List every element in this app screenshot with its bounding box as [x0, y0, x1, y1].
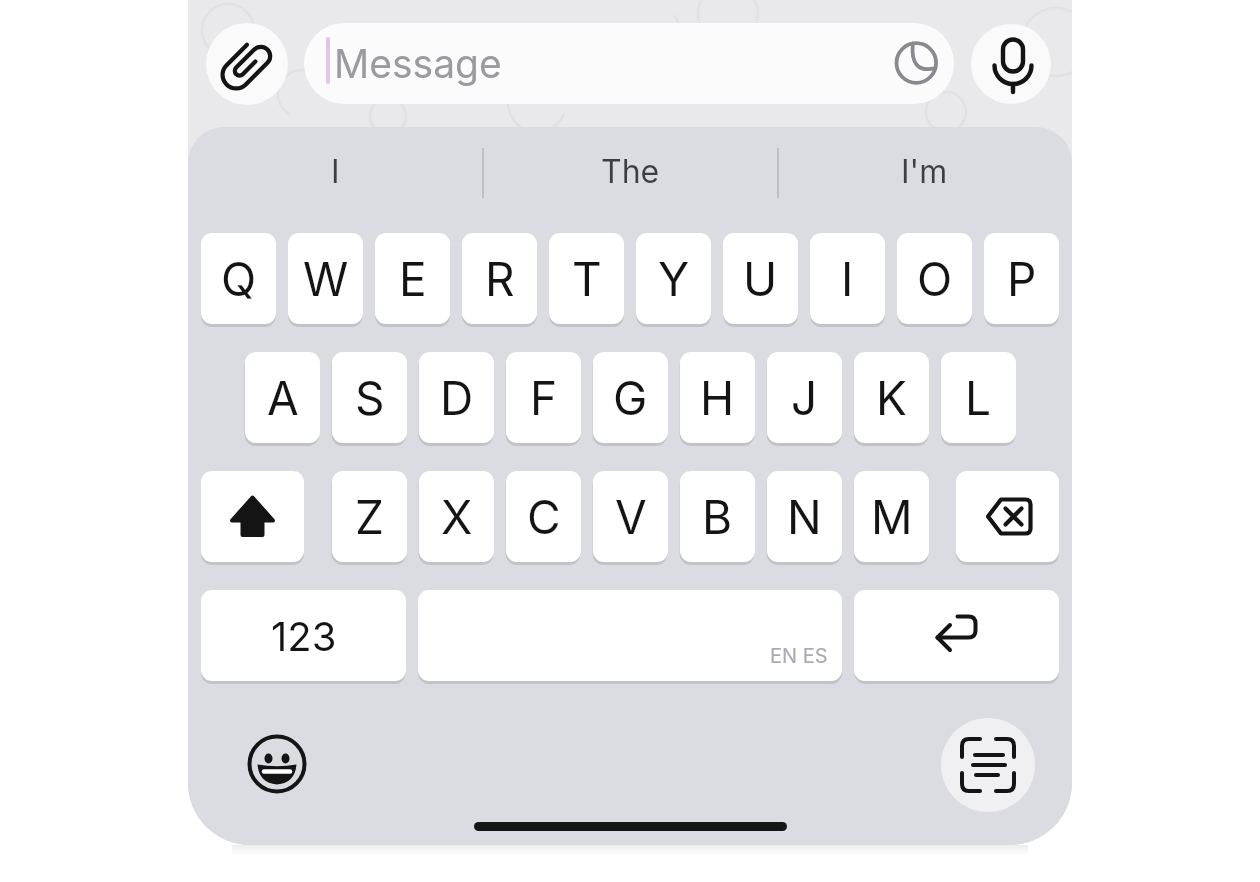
button[interactable]: I	[810, 233, 885, 324]
staticText: V	[615, 489, 647, 545]
button[interactable]: U	[723, 233, 798, 324]
staticText: F	[530, 370, 558, 426]
button[interactable]: C	[506, 471, 581, 562]
button[interactable]	[941, 718, 1035, 812]
staticText: P	[1007, 251, 1037, 307]
staticText: T	[572, 251, 602, 307]
staticText: H	[700, 370, 735, 426]
button[interactable]: F	[506, 352, 581, 443]
staticText: J	[791, 370, 818, 426]
staticText: Message	[334, 40, 502, 87]
button[interactable]: L	[941, 352, 1016, 443]
button[interactable]	[854, 590, 1059, 681]
button[interactable]: 123	[201, 590, 406, 681]
button[interactable]: I'm	[777, 140, 1072, 202]
button[interactable]: B	[680, 471, 755, 562]
staticText: EN ES	[770, 644, 828, 668]
staticText: K	[876, 370, 907, 426]
button[interactable]: Q	[201, 233, 276, 324]
staticText: M	[871, 489, 913, 545]
staticText: I	[841, 251, 854, 307]
staticText: N	[787, 489, 822, 545]
staticText: S	[355, 370, 385, 426]
staticText: E	[399, 251, 427, 307]
button[interactable]: J	[767, 352, 842, 443]
button[interactable]: P	[984, 233, 1059, 324]
staticText: L	[965, 370, 992, 426]
staticText: O	[917, 251, 953, 307]
button[interactable]: V	[593, 471, 668, 562]
button[interactable]: X	[419, 471, 494, 562]
staticText: I	[331, 152, 340, 191]
staticText: W	[303, 251, 349, 307]
staticText: G	[613, 370, 648, 426]
button[interactable]: Message	[304, 23, 954, 104]
staticText: D	[440, 370, 474, 426]
staticText: A	[267, 370, 299, 426]
staticText: X	[441, 489, 473, 545]
button[interactable]: Y	[636, 233, 711, 324]
staticText: U	[743, 251, 778, 307]
staticText: C	[527, 489, 561, 545]
button[interactable]: D	[419, 352, 494, 443]
button[interactable]: The	[483, 140, 778, 202]
button[interactable]: H	[680, 352, 755, 443]
button[interactable]	[201, 471, 304, 562]
staticText: Y	[658, 251, 690, 307]
button[interactable]: A	[245, 352, 320, 443]
staticText: B	[702, 489, 733, 545]
staticText: 123	[271, 612, 337, 660]
staticText: The	[601, 152, 660, 191]
button[interactable]	[956, 471, 1059, 562]
button[interactable]: W	[288, 233, 363, 324]
button[interactable]: K	[854, 352, 929, 443]
button[interactable]: S	[332, 352, 407, 443]
button[interactable]	[245, 732, 309, 796]
button[interactable]: T	[549, 233, 624, 324]
button[interactable]: E	[375, 233, 450, 324]
button[interactable]: O	[897, 233, 972, 324]
button[interactable]: Z	[332, 471, 407, 562]
button[interactable]: N	[767, 471, 842, 562]
button[interactable]: EN ES	[418, 590, 842, 681]
button[interactable]: R	[462, 233, 537, 324]
button[interactable]: G	[593, 352, 668, 443]
staticText: Q	[221, 251, 257, 307]
button[interactable]	[206, 23, 288, 105]
button[interactable]: M	[854, 471, 929, 562]
staticText: Z	[355, 489, 384, 545]
button[interactable]: I	[188, 140, 483, 202]
button[interactable]	[971, 24, 1051, 104]
staticText: R	[485, 251, 515, 307]
staticText: I'm	[901, 152, 948, 191]
